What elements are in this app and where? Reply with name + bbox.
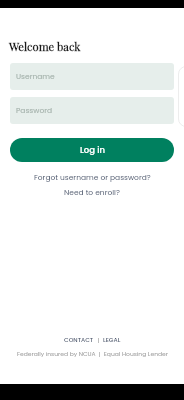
button[interactable]: CONTACT [64, 336, 94, 344]
staticText: Password [16, 105, 53, 115]
button[interactable]: Username [10, 63, 174, 90]
button[interactable]: Forgot username or password? [30, 171, 155, 183]
button[interactable]: Log in [10, 138, 174, 162]
button[interactable]: Need to enroll? [60, 186, 124, 198]
staticText: Username [16, 71, 55, 81]
staticText: Federally insured by NCUA | Equal Housin… [17, 350, 168, 358]
button[interactable]: Password [10, 97, 174, 124]
staticText: Log in [80, 144, 105, 156]
button[interactable]: LEGAL [103, 336, 121, 344]
staticText: Welcome back [9, 39, 81, 54]
